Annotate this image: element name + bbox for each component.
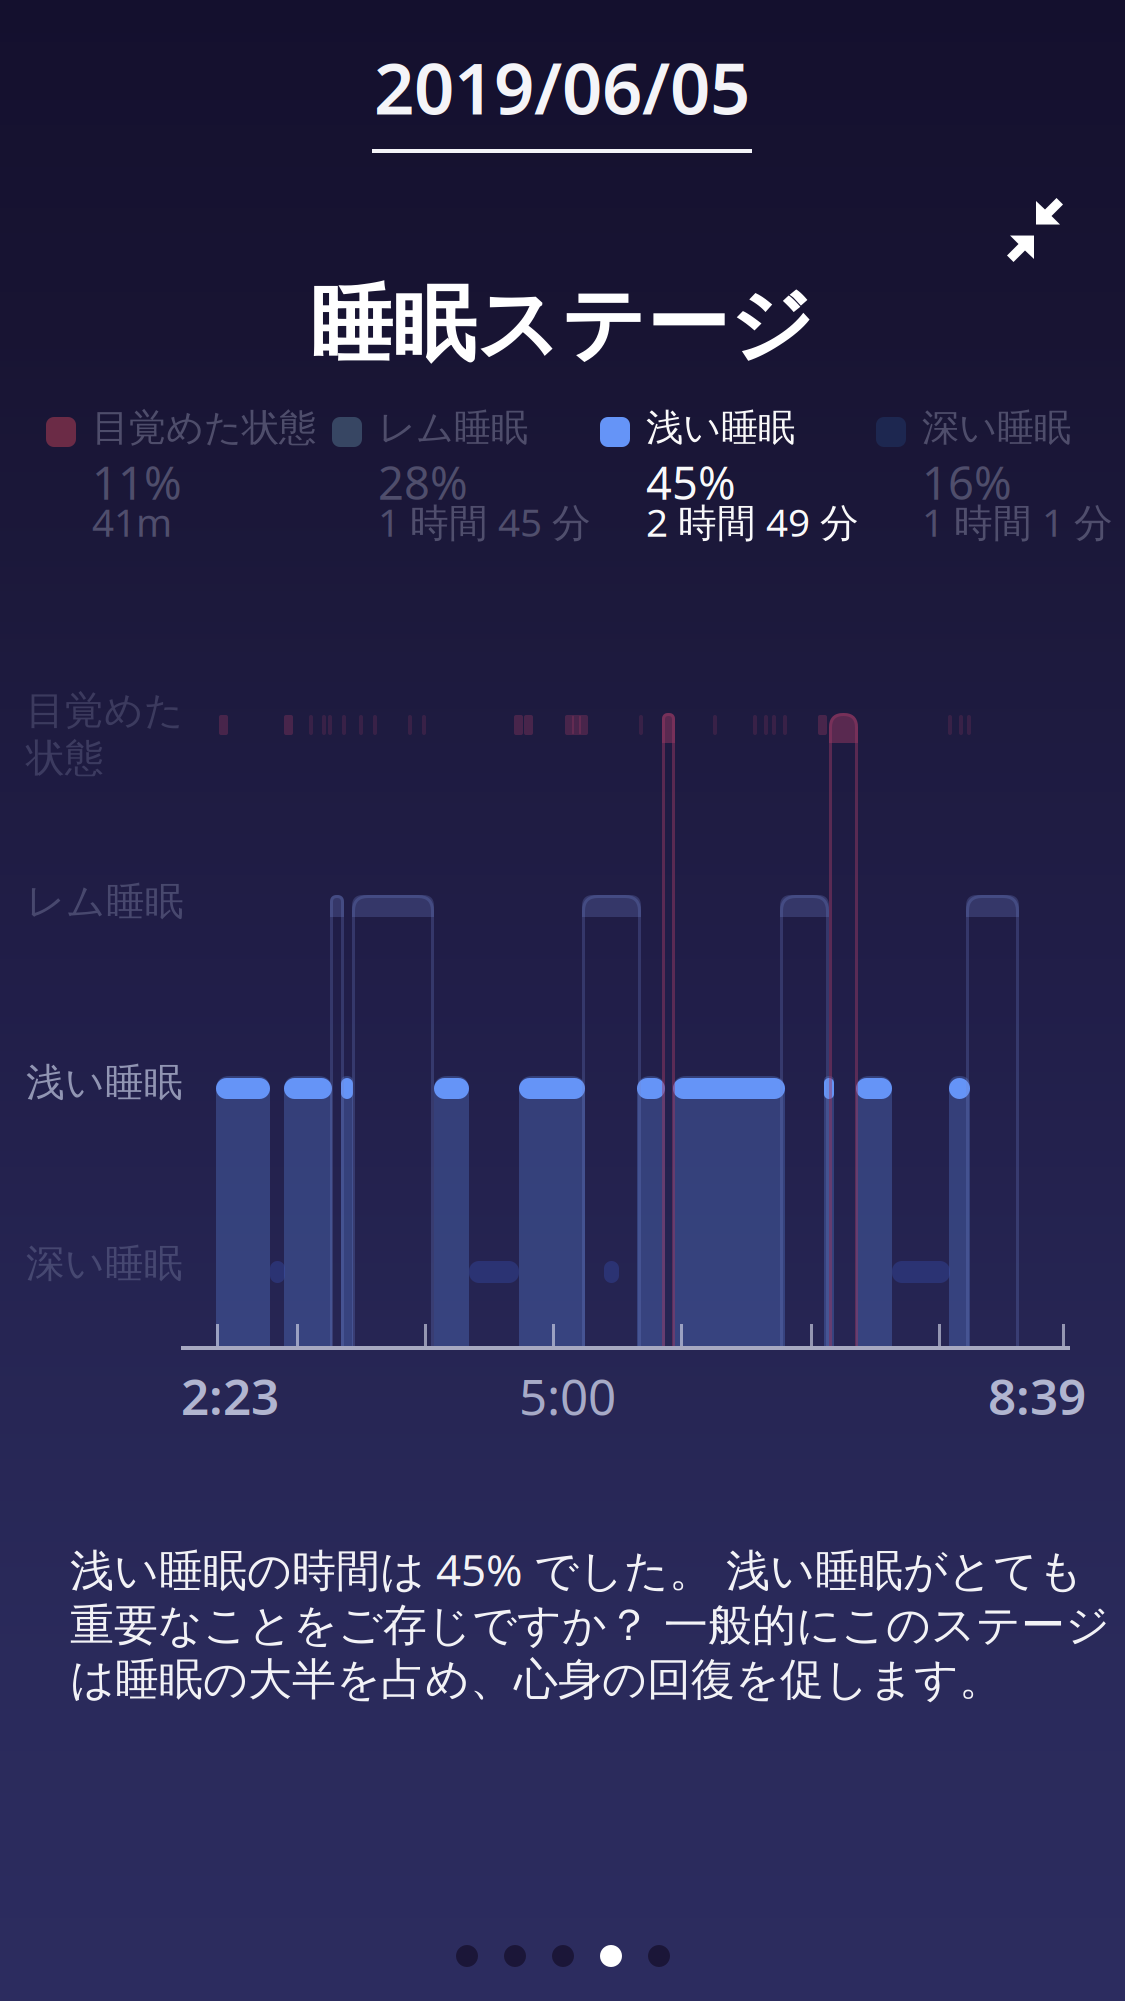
- staticText: 2019/06/05: [374, 40, 750, 134]
- staticText: 11%: [92, 452, 182, 512]
- staticText: レム睡眠: [378, 405, 528, 451]
- staticText: 目覚めた 状態: [26, 687, 184, 782]
- staticText: 浅い睡眠: [26, 1059, 183, 1106]
- staticText: 2 時間 49 分: [646, 496, 859, 547]
- staticText: 1 時間 45 分: [378, 496, 591, 547]
- staticText: 41m: [92, 496, 172, 547]
- staticText: 5:00: [519, 1363, 616, 1428]
- staticText: 睡眠ステージ: [310, 274, 814, 376]
- staticText: 浅い睡眠: [646, 405, 795, 451]
- staticText: 16%: [922, 452, 1012, 512]
- staticText: 目覚めた状態: [92, 405, 316, 451]
- staticText: 28%: [378, 452, 468, 512]
- staticText: 8:39: [988, 1363, 1086, 1428]
- button[interactable]: Collapse: [995, 190, 1075, 270]
- staticText: 深い睡眠: [922, 405, 1071, 451]
- staticText: 2:23: [181, 1363, 279, 1428]
- staticText: レム睡眠: [26, 878, 184, 925]
- staticText: 45%: [646, 452, 736, 512]
- staticText: 浅い睡眠の時間は 45% でした。 浅い睡眠がとても 重要なことをご存じですか？…: [70, 1540, 1110, 1706]
- staticText: 深い睡眠: [26, 1240, 183, 1287]
- staticText: 1 時間 1 分: [922, 496, 1113, 547]
